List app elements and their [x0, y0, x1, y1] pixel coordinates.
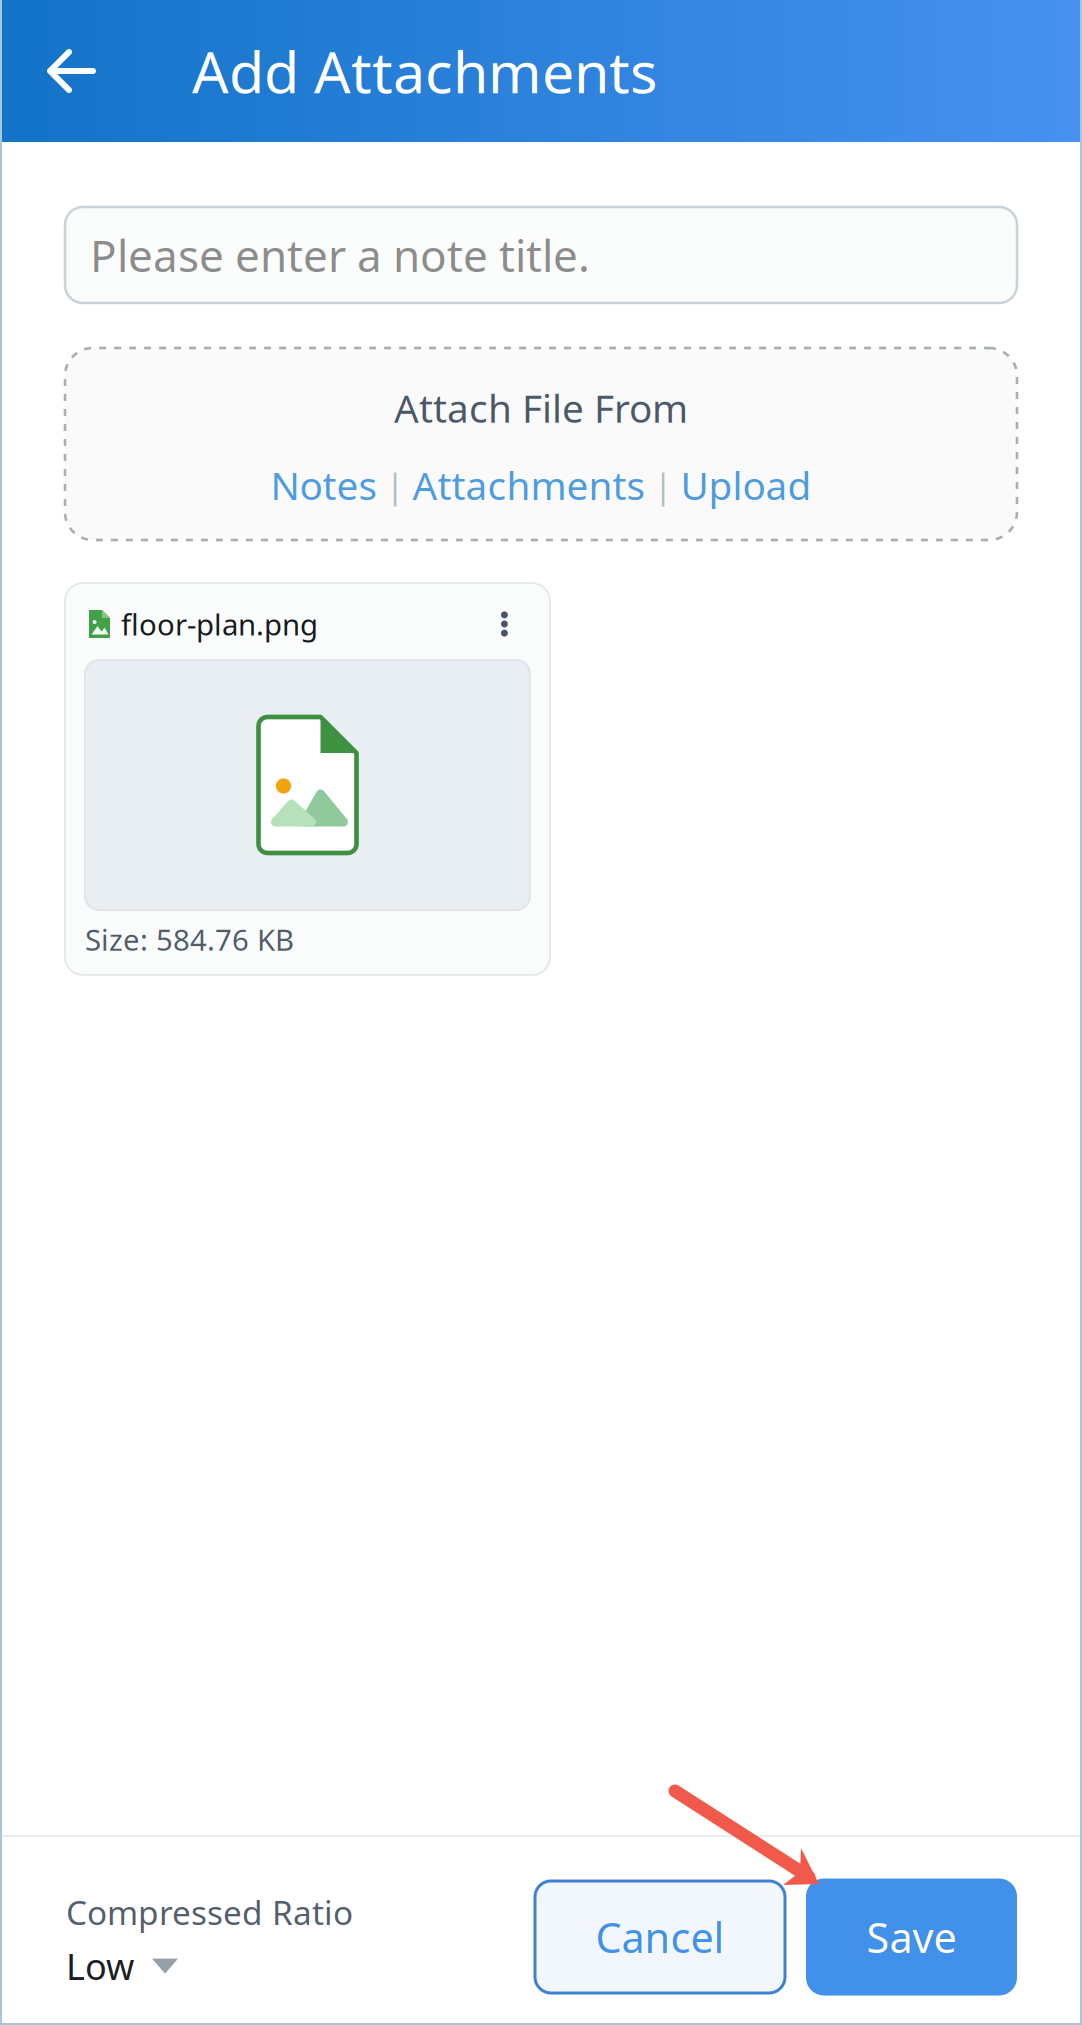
- button[interactable]: Please enter a note title.: [65, 207, 1017, 303]
- staticText: Upload: [680, 459, 811, 511]
- button[interactable]: Upload: [680, 459, 811, 511]
- button[interactable]: Save: [806, 1878, 1017, 1995]
- staticText: Please enter a note title.: [90, 226, 590, 284]
- button[interactable]: Notes: [270, 459, 377, 511]
- button[interactable]: Cancel: [535, 1881, 785, 1993]
- button[interactable]: Attachments: [412, 459, 645, 511]
- staticText: Low: [66, 1942, 134, 1990]
- staticText: Notes: [270, 459, 377, 511]
- button[interactable]: Back: [0, 0, 192, 142]
- staticText: |: [653, 462, 672, 508]
- staticText: Compressed Ratio: [66, 1890, 353, 1934]
- button[interactable]: Compressed Ratio: [66, 1870, 353, 1990]
- staticText: Add Attachments: [192, 33, 657, 109]
- staticText: Attachments: [412, 459, 645, 511]
- staticText: Cancel: [595, 1910, 724, 1964]
- staticText: floor-plan.png: [121, 604, 318, 643]
- staticText: |: [385, 462, 404, 508]
- staticText: Size: 584.76 KB: [85, 920, 294, 959]
- button[interactable]: floor-plan.png: [65, 583, 550, 975]
- staticText: Save: [866, 1910, 956, 1964]
- staticText: Attach File From: [394, 382, 688, 433]
